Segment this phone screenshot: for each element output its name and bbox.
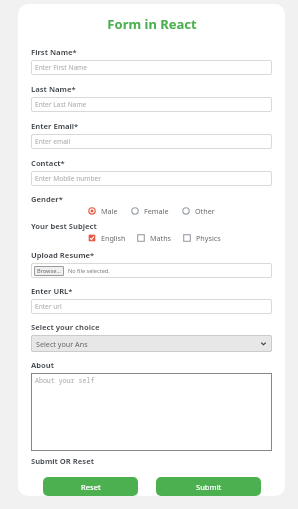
staticText: Enter URL*	[31, 286, 73, 296]
staticText: Male	[101, 206, 118, 216]
staticText: Enter url	[35, 302, 62, 311]
staticText: Submit	[196, 482, 222, 492]
staticText: Last Name*	[31, 84, 76, 94]
button[interactable]: Enter First Name	[31, 60, 272, 75]
staticText: English	[101, 233, 126, 243]
button[interactable]: Browse...	[31, 263, 272, 278]
staticText: Your best Subject	[31, 221, 97, 231]
staticText: About	[31, 360, 55, 370]
button[interactable]: Enter Mobile number	[31, 171, 272, 186]
button[interactable]: Select your Ans	[31, 335, 272, 352]
staticText: Female	[144, 206, 169, 216]
button[interactable]: Other	[182, 206, 215, 216]
staticText: Enter First Name	[35, 63, 87, 72]
staticText: Enter Mobile number	[35, 174, 101, 183]
button[interactable]: About your self	[31, 373, 272, 451]
button[interactable]: Enter Last Name	[31, 97, 272, 112]
staticText: Select your Ans	[36, 339, 88, 349]
button[interactable]: Enter url	[31, 299, 272, 314]
button[interactable]: English	[88, 233, 126, 243]
staticText: About your self	[35, 376, 95, 385]
button[interactable]: Male	[88, 206, 118, 216]
button[interactable]: Reset	[43, 477, 138, 496]
staticText: Maths	[150, 233, 172, 243]
staticText: Submit OR Reset	[31, 456, 94, 466]
button[interactable]: Enter email	[31, 134, 272, 149]
staticText: Select your choice	[31, 322, 100, 332]
staticText: Upload Resume*	[31, 250, 95, 260]
staticText: Gender*	[31, 194, 63, 204]
staticText: Contact*	[31, 158, 65, 168]
staticText: Other	[195, 206, 215, 216]
staticText: Browse...	[37, 267, 61, 275]
staticText: Form in React	[107, 15, 197, 33]
staticText: Physics	[196, 233, 221, 243]
staticText: Enter email	[35, 137, 71, 146]
staticText: Reset	[81, 482, 101, 492]
staticText: First Name*	[31, 47, 77, 57]
other: Open choice dropdown	[36, 340, 267, 347]
button[interactable]: Submit	[156, 477, 261, 496]
staticText: Enter Last Name	[35, 100, 87, 109]
staticText: Enter Email*	[31, 121, 79, 131]
staticText: No file selected.	[68, 267, 110, 275]
button[interactable]: Maths	[137, 233, 172, 243]
button[interactable]: Female	[131, 206, 169, 216]
button[interactable]: Physics	[183, 233, 221, 243]
